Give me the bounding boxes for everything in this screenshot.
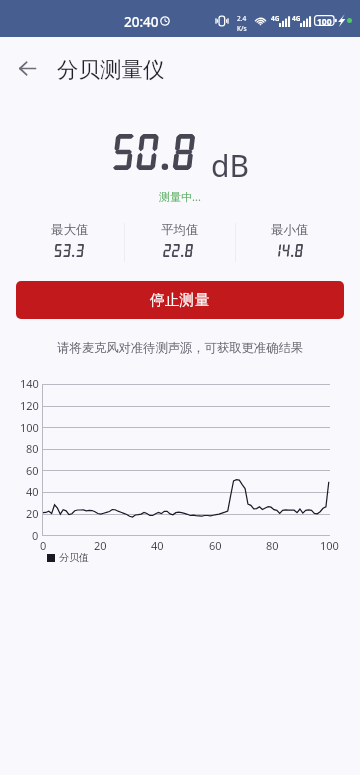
button[interactable]: 停止测量 xyxy=(16,281,344,319)
button[interactable]: Back xyxy=(12,53,42,83)
staticText: 0 xyxy=(40,538,47,553)
staticText: 请将麦克风对准待测声源，可获取更准确结果 xyxy=(0,340,360,355)
staticText: 100 xyxy=(20,420,39,435)
staticText: 80 xyxy=(26,441,39,456)
staticText: 120 xyxy=(20,398,39,413)
staticText: 60 xyxy=(209,538,222,553)
staticText: 4G xyxy=(271,14,280,23)
staticText: 20 xyxy=(26,506,39,521)
staticText: 最大值 xyxy=(51,222,89,238)
staticText: 平均值 xyxy=(161,222,199,238)
staticText: K/s xyxy=(237,24,247,33)
staticText: 停止测量 xyxy=(150,291,210,310)
staticText: 最小值 xyxy=(271,222,309,238)
staticText: 40 xyxy=(151,538,164,553)
staticText: 100 xyxy=(320,538,339,553)
staticText: 20:40 xyxy=(124,13,159,31)
staticText: 100 xyxy=(317,16,332,28)
staticText: 分贝值 xyxy=(59,551,89,564)
staticText: 40 xyxy=(26,484,39,499)
staticText: 60 xyxy=(26,463,39,478)
staticText: 140 xyxy=(20,376,39,391)
staticText: 20 xyxy=(94,538,107,553)
staticText: dB xyxy=(211,145,249,186)
staticText: 分贝测量仪 xyxy=(57,56,165,83)
staticText: 4G xyxy=(292,14,301,23)
staticText: 2.4 xyxy=(237,14,247,23)
staticText: 测量中... xyxy=(0,189,360,204)
staticText: 80 xyxy=(266,538,279,553)
staticText: 0 xyxy=(32,528,39,543)
